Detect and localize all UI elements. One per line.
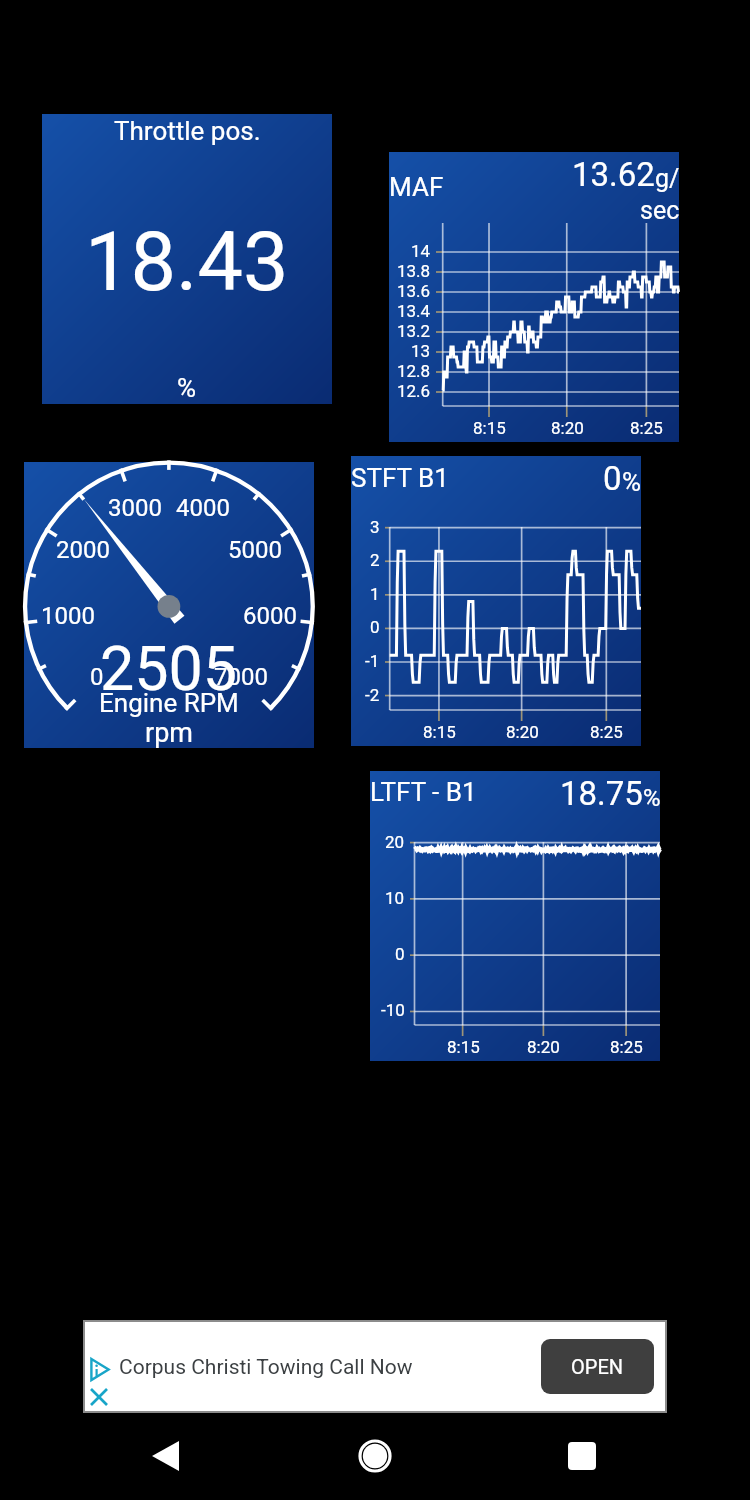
staticText: -2 xyxy=(365,685,380,705)
staticText: 13.4 xyxy=(397,301,431,321)
staticText: 20 xyxy=(385,832,405,852)
staticText: 8:15 xyxy=(447,1037,480,1057)
staticText: STFT B1 xyxy=(351,463,449,493)
staticText: 8:20 xyxy=(551,418,584,438)
staticText: -10 xyxy=(381,1000,405,1020)
staticText: 14 xyxy=(411,241,431,261)
button[interactable]: Throttle pos. xyxy=(42,114,332,404)
staticText: % xyxy=(177,373,197,403)
staticText: 7000 xyxy=(214,663,268,691)
staticText: 0 xyxy=(90,663,104,691)
staticText: 13 xyxy=(411,341,431,361)
staticText: 13.6 xyxy=(397,281,431,301)
staticText: 13.8 xyxy=(397,261,431,281)
button[interactable]: Home xyxy=(339,1420,411,1492)
staticText: MAF xyxy=(389,172,444,202)
staticText: 5000 xyxy=(228,536,282,564)
staticText: 10 xyxy=(385,888,405,908)
staticText: LTFT - B1 xyxy=(370,777,477,807)
button[interactable]: Engine RPM 2505 rpm xyxy=(24,462,314,748)
staticText: 13.62 xyxy=(572,155,655,194)
staticText: Engine RPM xyxy=(99,688,239,718)
staticText: 8:25 xyxy=(630,418,663,438)
staticText: % xyxy=(643,784,661,812)
staticText: sec xyxy=(640,196,680,225)
staticText: g/ xyxy=(655,164,680,193)
button[interactable]: LTFT - B1 xyxy=(370,771,660,1061)
staticText: 12.8 xyxy=(397,361,431,381)
staticText: 2505 xyxy=(100,633,238,704)
button[interactable]: STFT B1 xyxy=(351,456,641,746)
button[interactable]: Recent apps xyxy=(546,1420,618,1492)
staticText: 3000 xyxy=(108,494,162,522)
staticText: 13.2 xyxy=(397,321,431,341)
button[interactable]: OPEN xyxy=(541,1339,654,1394)
staticText: 18.75 xyxy=(560,774,643,813)
other: Close ad xyxy=(91,1389,107,1405)
staticText: 8:15 xyxy=(473,418,506,438)
staticText: 4000 xyxy=(176,494,230,522)
staticText: 3 xyxy=(370,517,380,537)
staticText: 8:25 xyxy=(590,722,623,742)
staticText: Throttle pos. xyxy=(114,116,261,146)
button[interactable]: Back xyxy=(129,1420,201,1492)
staticText: 1000 xyxy=(41,602,95,630)
staticText: Corpus Christi Towing Call Now xyxy=(119,1355,413,1380)
staticText: 0 xyxy=(603,459,622,498)
staticText: 1 xyxy=(370,584,380,604)
staticText: 0 xyxy=(395,944,405,964)
staticText: rpm xyxy=(145,717,193,749)
staticText: 2 xyxy=(370,550,380,570)
staticText: 0 xyxy=(370,617,380,637)
button[interactable]: Corpus Christi Towing Call Now xyxy=(85,1322,665,1411)
button[interactable]: MAF xyxy=(389,152,679,442)
staticText: 12.6 xyxy=(397,381,431,401)
staticText: OPEN xyxy=(571,1355,624,1378)
staticText: -1 xyxy=(365,651,380,671)
staticText: % xyxy=(622,467,642,497)
staticText: 18.43 xyxy=(85,215,289,310)
staticText: 8:20 xyxy=(527,1037,560,1057)
staticText: 2000 xyxy=(56,536,110,564)
staticText: 8:20 xyxy=(506,722,539,742)
staticText: 8:25 xyxy=(610,1037,643,1057)
staticText: 8:15 xyxy=(423,722,456,742)
staticText: 6000 xyxy=(243,602,297,630)
